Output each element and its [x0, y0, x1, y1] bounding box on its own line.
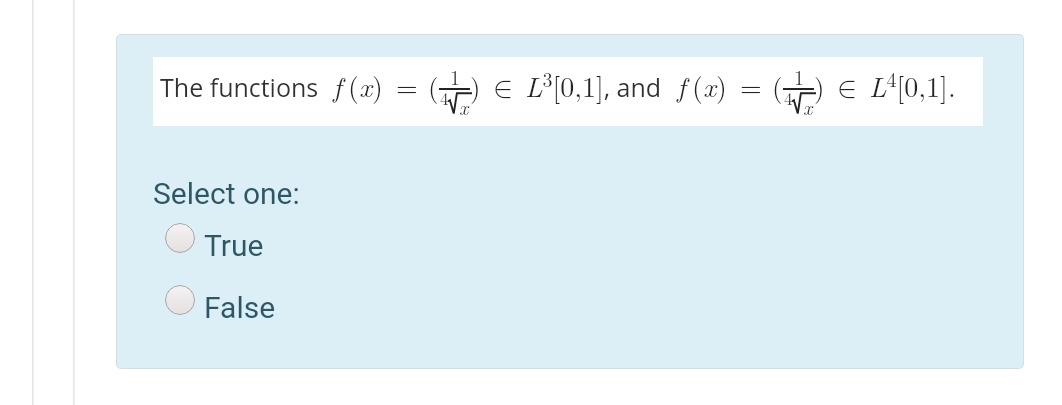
staticText: f — [677, 65, 686, 105]
button[interactable]: False — [165, 285, 286, 320]
staticText: = — [740, 65, 762, 105]
staticText: 1 — [450, 62, 460, 90]
staticText: ( — [772, 67, 783, 105]
staticText: 4 — [784, 86, 793, 110]
staticText: , and — [604, 70, 662, 104]
staticText: . — [948, 65, 956, 105]
staticText: (x) — [348, 65, 383, 105]
staticText: The functions — [160, 70, 319, 104]
staticText: ) — [814, 67, 825, 105]
staticText: ∈ — [837, 73, 858, 103]
staticText: ) — [470, 67, 481, 105]
staticText: f — [333, 65, 342, 105]
staticText: ( — [428, 67, 439, 105]
staticText: ∈ — [493, 73, 514, 103]
staticText: 4 — [440, 86, 449, 110]
staticText: 1 — [794, 62, 804, 90]
staticText: (x) — [692, 65, 727, 105]
staticText: = — [396, 65, 418, 105]
staticText: x — [459, 92, 469, 120]
staticText: False — [204, 290, 276, 325]
staticText: L3[0,1] — [525, 64, 604, 105]
staticText: L4[0,1] — [869, 64, 948, 105]
staticText: True — [204, 228, 264, 263]
staticText: x — [803, 92, 813, 120]
staticText: Select one: — [153, 176, 300, 211]
button[interactable]: True — [165, 223, 274, 258]
